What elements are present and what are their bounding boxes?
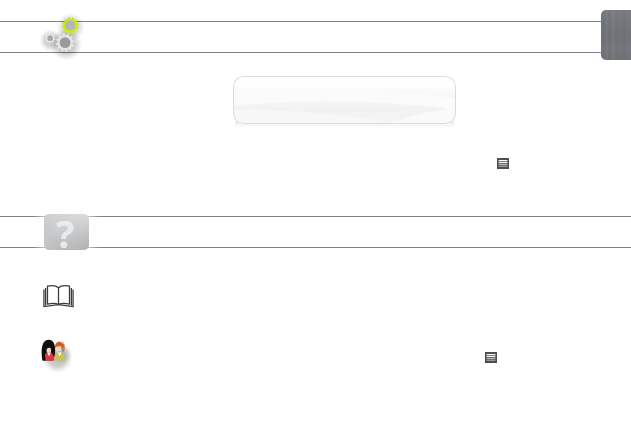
button[interactable]: Dictionary — [43, 284, 74, 307]
staticText: ? — [56, 207, 75, 255]
button[interactable]: Contacts — [40, 337, 73, 365]
button[interactable]: List — [485, 352, 497, 363]
button[interactable]: Button — [233, 76, 456, 124]
button[interactable]: Settings — [30, 2, 90, 62]
button[interactable]: Help — [44, 214, 89, 250]
button[interactable]: List — [497, 158, 509, 169]
button[interactable]: Panel — [601, 10, 631, 60]
